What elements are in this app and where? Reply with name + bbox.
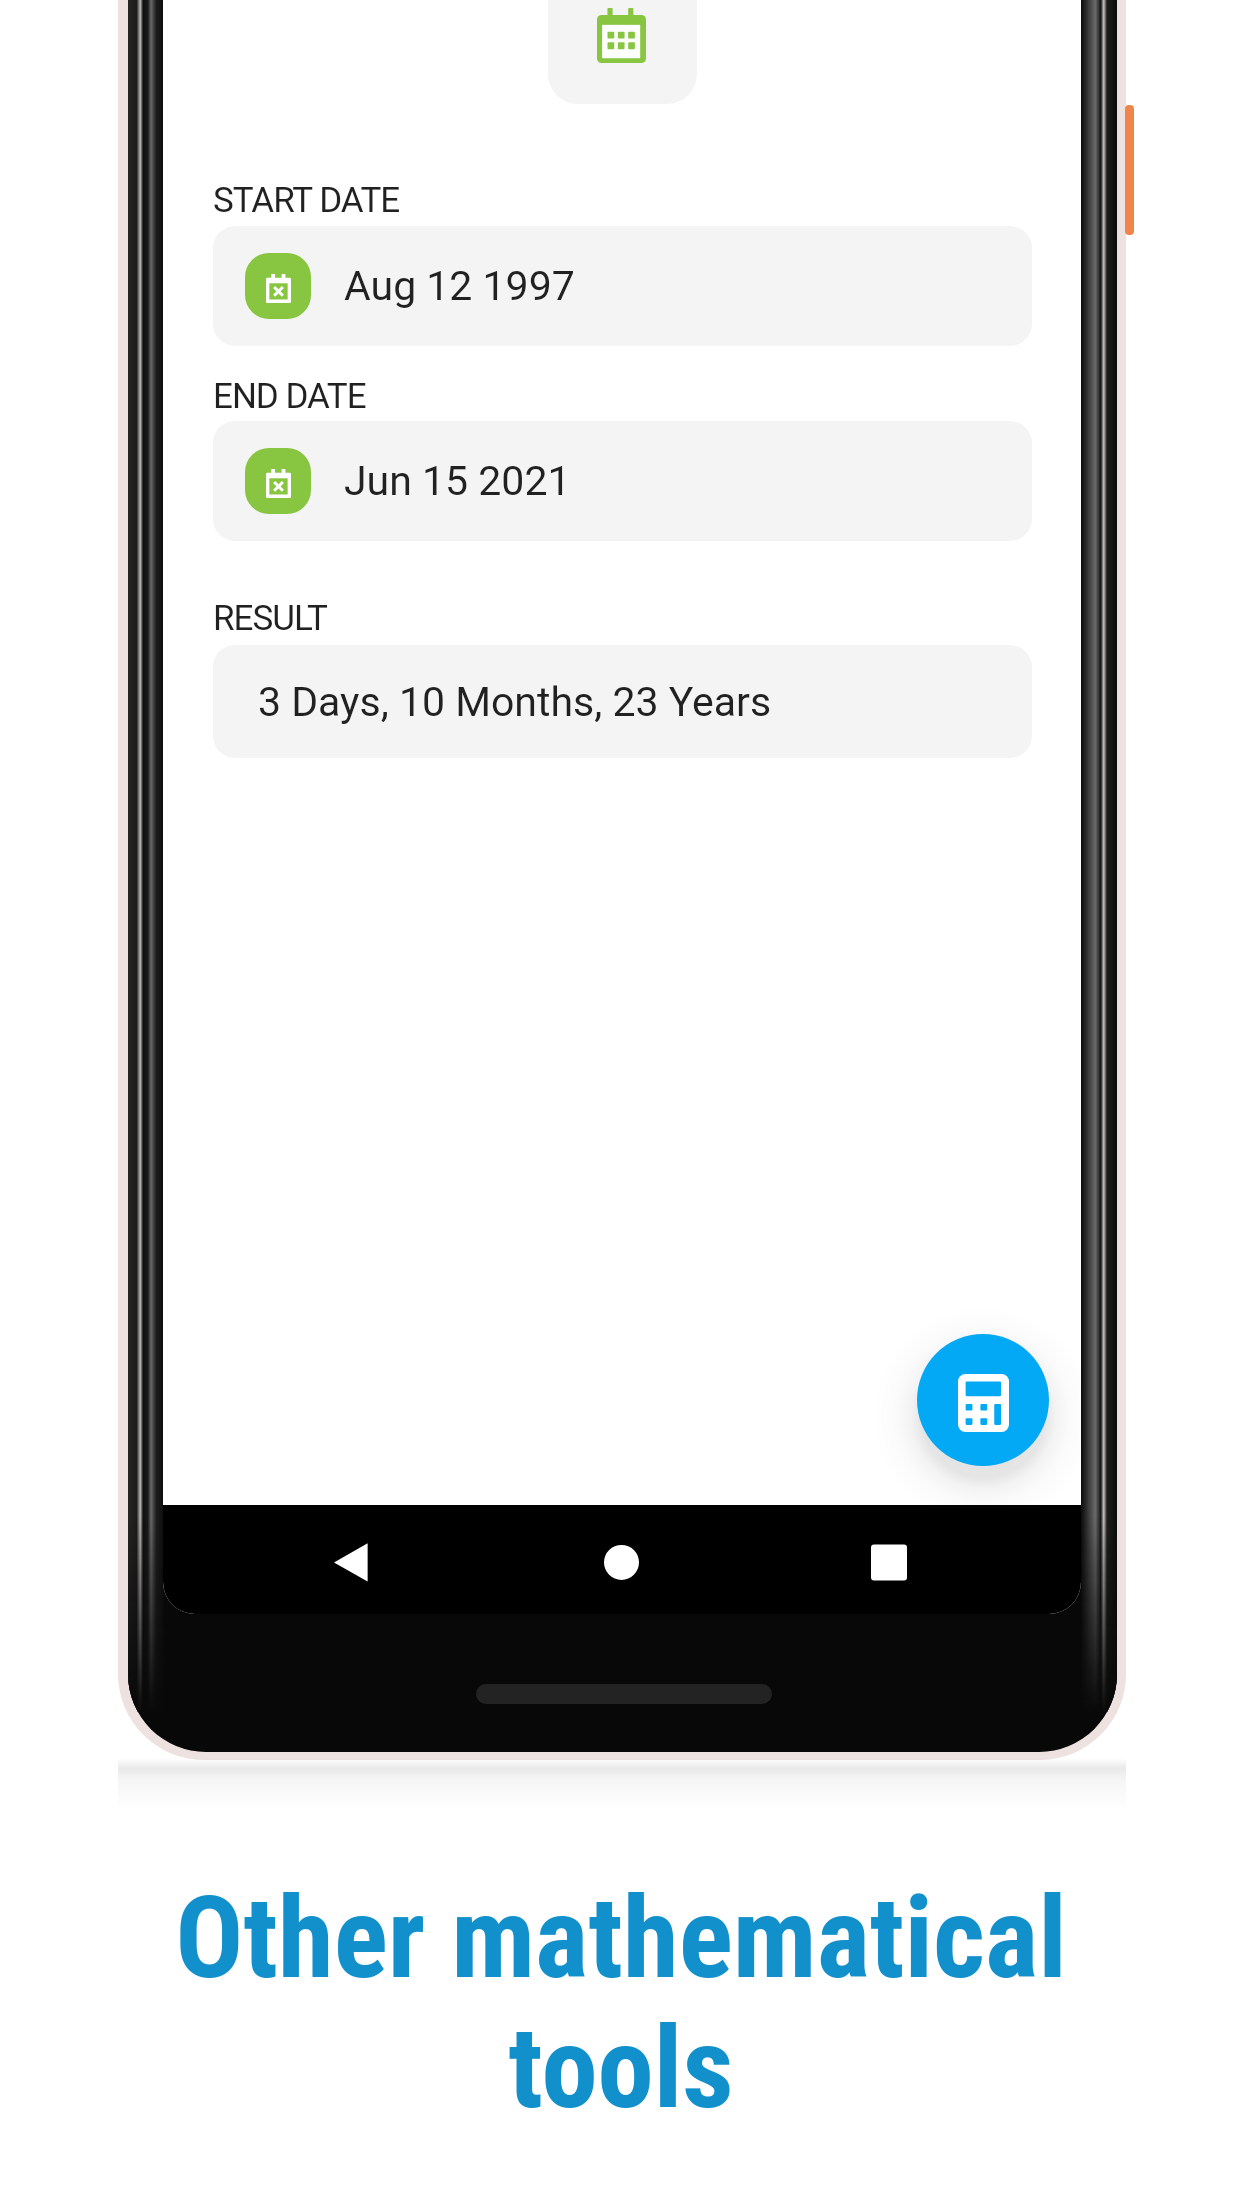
staticText: RESULT (213, 598, 327, 639)
button[interactable]: Back (297, 1508, 405, 1612)
button[interactable]: 3 Days, 10 Months, 23 Years (213, 645, 1032, 758)
staticText: Aug 12 1997 (344, 262, 575, 310)
button[interactable]: Date difference (548, 0, 697, 104)
button[interactable]: Calculator (917, 1334, 1049, 1466)
button[interactable]: Aug 12 1997 (213, 226, 1032, 346)
staticText: Jun 15 2021 (344, 457, 571, 505)
button[interactable]: Recent apps (835, 1508, 943, 1612)
staticText: END DATE (213, 376, 366, 417)
staticText: 3 Days, 10 Months, 23 Years (258, 678, 772, 726)
button[interactable]: Home (567, 1508, 675, 1612)
staticText: Other mathematical tools (175, 1872, 1067, 2135)
button[interactable]: Jun 15 2021 (213, 421, 1032, 541)
staticText: START DATE (213, 180, 400, 221)
